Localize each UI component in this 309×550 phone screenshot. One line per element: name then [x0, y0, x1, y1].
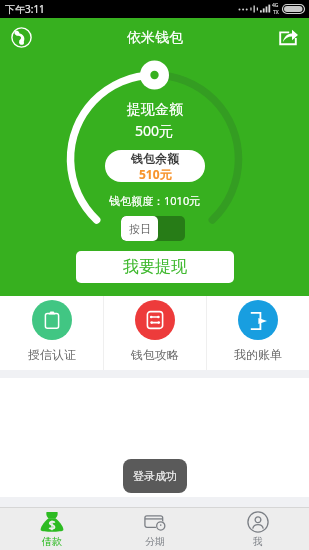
staticText: 授信认证 — [28, 347, 76, 362]
button[interactable]: 钱包攻略 — [104, 296, 206, 370]
button[interactable]: Share — [273, 22, 303, 52]
staticText: 我的账单 — [234, 347, 282, 362]
staticText: 4G — [272, 2, 279, 9]
staticText: 钱包额度：1010元 — [109, 193, 201, 208]
button[interactable]: 借款 — [0, 508, 103, 550]
button[interactable]: 钱包余额 — [105, 150, 205, 182]
staticText: 我 — [253, 535, 263, 548]
button[interactable]: 我 — [206, 508, 309, 550]
staticText: 借款 — [42, 535, 62, 548]
button[interactable]: 分期 — [103, 508, 206, 550]
staticText: 下午3:11 — [5, 2, 45, 16]
staticText: 钱包余额 — [131, 151, 179, 166]
staticText: 钱包攻略 — [131, 347, 179, 362]
button[interactable]: 我要提现 — [76, 251, 234, 283]
staticText: TX — [273, 9, 279, 16]
button[interactable]: Customer service call — [6, 22, 36, 52]
staticText: 登录成功 — [133, 469, 177, 483]
staticText: 依米钱包 — [127, 29, 183, 47]
staticText: 提现金额 — [127, 101, 183, 119]
staticText: 510元 — [139, 166, 172, 182]
button[interactable]: 授信认证 — [0, 296, 103, 370]
staticText: 500元 — [135, 121, 174, 140]
button[interactable]: 登录成功 — [123, 459, 187, 493]
button[interactable]: 按日 — [121, 216, 185, 241]
staticText: 按日 — [129, 222, 151, 236]
button[interactable]: 我的账单 — [207, 296, 309, 370]
staticText: 分期 — [145, 535, 165, 548]
staticText: 我要提现 — [123, 257, 187, 277]
